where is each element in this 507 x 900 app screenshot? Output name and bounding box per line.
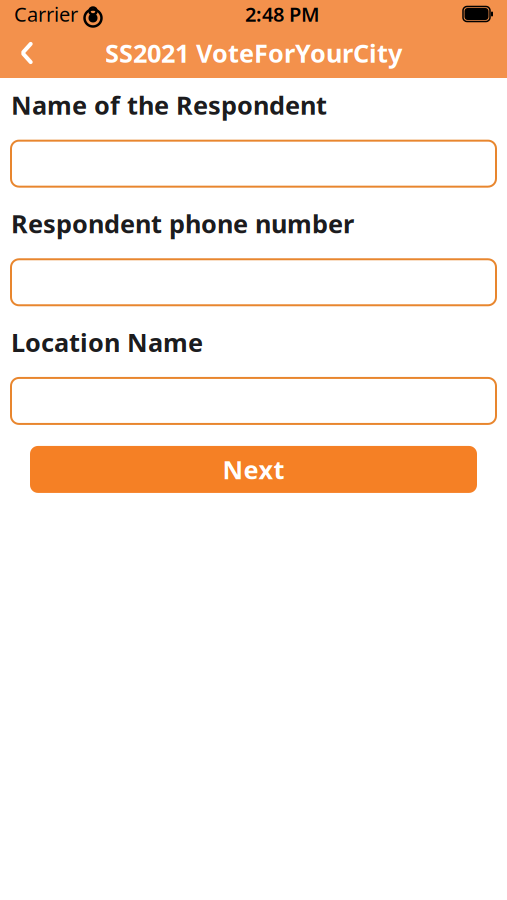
- staticText: Carrier: [14, 1, 78, 27]
- button[interactable]: Text field: [11, 378, 496, 424]
- button[interactable]: Back: [0, 28, 54, 78]
- staticText: Respondent phone number: [11, 207, 354, 240]
- button[interactable]: Next: [30, 446, 477, 493]
- staticText: SS2021 VoteForYourCity: [105, 36, 402, 70]
- staticText: Next: [222, 453, 284, 486]
- button[interactable]: Text field: [11, 259, 496, 305]
- staticText: Location Name: [11, 325, 203, 359]
- button[interactable]: Text field: [11, 141, 496, 187]
- staticText: 2:48 PM: [245, 1, 320, 27]
- staticText: Name of the Respondent: [11, 88, 327, 122]
